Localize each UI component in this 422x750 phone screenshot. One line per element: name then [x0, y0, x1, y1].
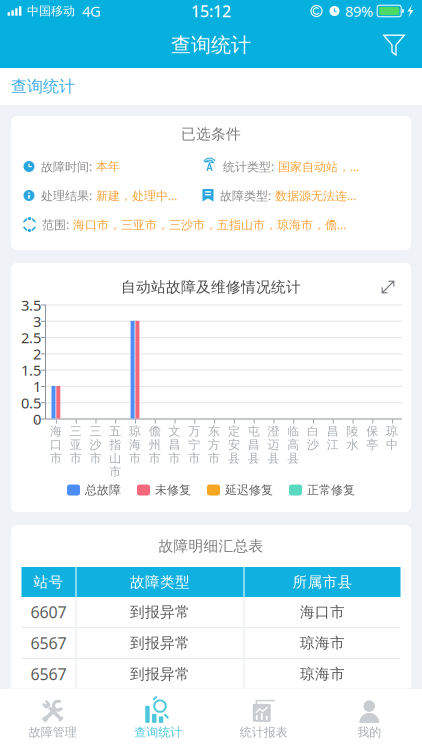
staticText: 0 — [33, 409, 41, 429]
staticText: 故障管理 — [29, 725, 77, 740]
staticText: 统计类型: — [223, 158, 274, 174]
staticText: 昌 — [327, 424, 339, 439]
staticText: 到报异常 — [130, 634, 190, 652]
button[interactable]: 筛选 — [378, 22, 422, 68]
staticText: 市 — [129, 451, 141, 466]
staticText: 延迟修复 — [225, 483, 273, 497]
staticText: 昌 — [169, 437, 181, 452]
staticText: 中国移动 — [27, 4, 75, 18]
staticText: 正常修复 — [307, 483, 355, 497]
staticText: 查询统计 — [134, 725, 182, 740]
button[interactable]: 全屏 — [375, 274, 401, 300]
staticText: 县 — [287, 451, 299, 466]
staticText: 市 — [89, 451, 101, 466]
staticText: 东 — [208, 424, 220, 439]
staticText: 2 — [33, 344, 41, 364]
staticText: 琼 — [386, 424, 398, 439]
staticText: 五 — [109, 424, 121, 439]
staticText: 未修复 — [155, 483, 191, 497]
staticText: 文 — [169, 424, 181, 439]
staticText: 站号 — [33, 573, 63, 591]
staticText: 海口市 — [300, 603, 345, 621]
staticText: 查询统计 — [171, 33, 251, 57]
staticText: 县 — [267, 451, 279, 466]
staticText: 0.5 — [21, 393, 41, 412]
staticText: 宁 — [188, 437, 200, 452]
staticText: 15:12 — [191, 0, 231, 22]
staticText: 查询统计 — [11, 77, 75, 96]
staticText: 统计报表 — [240, 725, 288, 740]
staticText: 指 — [109, 437, 121, 452]
staticText: 6567 — [30, 663, 66, 685]
staticText: 市 — [50, 451, 62, 466]
staticText: 临 — [287, 424, 299, 439]
staticText: 琼 — [129, 424, 141, 439]
staticText: 万 — [188, 424, 200, 439]
staticText: 市 — [188, 451, 200, 466]
staticText: 山 — [109, 451, 121, 466]
staticText: 本年 — [96, 159, 120, 174]
staticText: 屯 — [248, 424, 260, 439]
staticText: 市 — [208, 451, 220, 466]
button[interactable]: 我的 — [316, 688, 422, 750]
button[interactable]: 故障管理 — [0, 688, 105, 750]
staticText: 海 — [129, 437, 141, 452]
staticText: 安 — [228, 437, 240, 452]
staticText: 保 — [366, 424, 378, 439]
staticText: 3.5 — [21, 295, 41, 315]
staticText: 故障时间: — [41, 158, 92, 174]
staticText: 方 — [208, 437, 220, 452]
staticText: 口 — [50, 437, 62, 452]
staticText: 琼海市 — [300, 665, 345, 683]
staticText: 海口市，三亚市，三沙市，五指山市，琼海市，儋… — [73, 216, 346, 232]
staticText: 我的 — [357, 725, 381, 740]
staticText: 3 — [33, 311, 41, 331]
staticText: 故障类型 — [130, 573, 190, 591]
staticText: 县 — [228, 451, 240, 466]
staticText: 亚 — [70, 437, 82, 452]
staticText: 故障类型: — [220, 187, 271, 203]
staticText: 澄 — [267, 424, 279, 439]
staticText: 89% — [345, 1, 373, 21]
staticText: 亭 — [366, 437, 378, 452]
staticText: 6607 — [30, 601, 66, 623]
staticText: 水 — [347, 437, 359, 452]
button[interactable]: 查询统计 — [105, 688, 211, 750]
staticText: 州 — [149, 437, 161, 452]
staticText: 国家自动站，… — [278, 158, 359, 174]
staticText: 故障明细汇总表 — [158, 537, 263, 555]
staticText: 白 — [307, 424, 319, 439]
staticText: 已选条件 — [181, 125, 241, 143]
staticText: 新建，处理中… — [96, 187, 177, 203]
staticText: 迈 — [267, 437, 279, 452]
staticText: 1.5 — [21, 360, 41, 380]
staticText: 1 — [33, 377, 41, 396]
button[interactable]: 统计报表 — [211, 688, 316, 750]
staticText: 定 — [228, 424, 240, 439]
staticText: 儋 — [149, 424, 161, 439]
staticText: 市 — [109, 464, 121, 479]
staticText: 6567 — [30, 632, 66, 654]
staticText: 沙 — [307, 437, 319, 452]
staticText: 数据源无法连… — [275, 187, 356, 203]
staticText: 三 — [70, 424, 82, 439]
staticText: 所属市县 — [292, 573, 352, 591]
staticText: 沙 — [89, 437, 101, 452]
staticText: 市 — [149, 451, 161, 466]
staticText: 海 — [50, 424, 62, 439]
staticText: 范围: — [42, 216, 69, 232]
staticText: 三 — [89, 424, 101, 439]
staticText: 自动站故障及维修情况统计 — [121, 278, 301, 296]
staticText: 中 — [386, 437, 398, 452]
staticText: 处理结果: — [41, 187, 92, 203]
staticText: 2.5 — [21, 328, 41, 347]
staticText: 高 — [287, 437, 299, 452]
staticText: 到报异常 — [130, 665, 190, 683]
staticText: 江 — [327, 437, 339, 452]
staticText: 市 — [169, 451, 181, 466]
staticText: 4G — [82, 1, 101, 21]
staticText: 琼海市 — [300, 634, 345, 652]
staticText: 陵 — [347, 424, 359, 439]
staticText: 市 — [70, 451, 82, 466]
staticText: 到报异常 — [130, 603, 190, 621]
